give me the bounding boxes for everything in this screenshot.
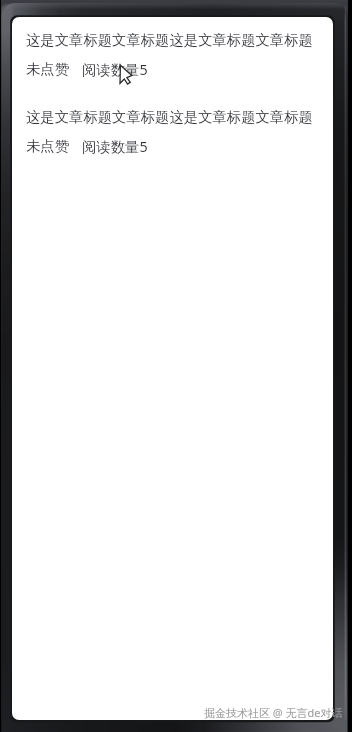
staticText: 这是文章标题文章标题这是文章标题文章标题 <box>26 31 313 49</box>
staticText: 未点赞 <box>26 60 70 78</box>
staticText: 未点赞 <box>26 137 70 155</box>
button[interactable]: 这是文章标题文章标题这是文章标题文章标题 <box>12 17 333 94</box>
button[interactable]: 这是文章标题文章标题这是文章标题文章标题 <box>12 94 333 171</box>
staticText: 这是文章标题文章标题这是文章标题文章标题 <box>26 108 313 126</box>
staticText: 阅读数量5 <box>82 60 148 80</box>
staticText: 掘金技术社区 @ 无言de对话 <box>204 705 343 720</box>
staticText: 阅读数量5 <box>82 137 148 157</box>
